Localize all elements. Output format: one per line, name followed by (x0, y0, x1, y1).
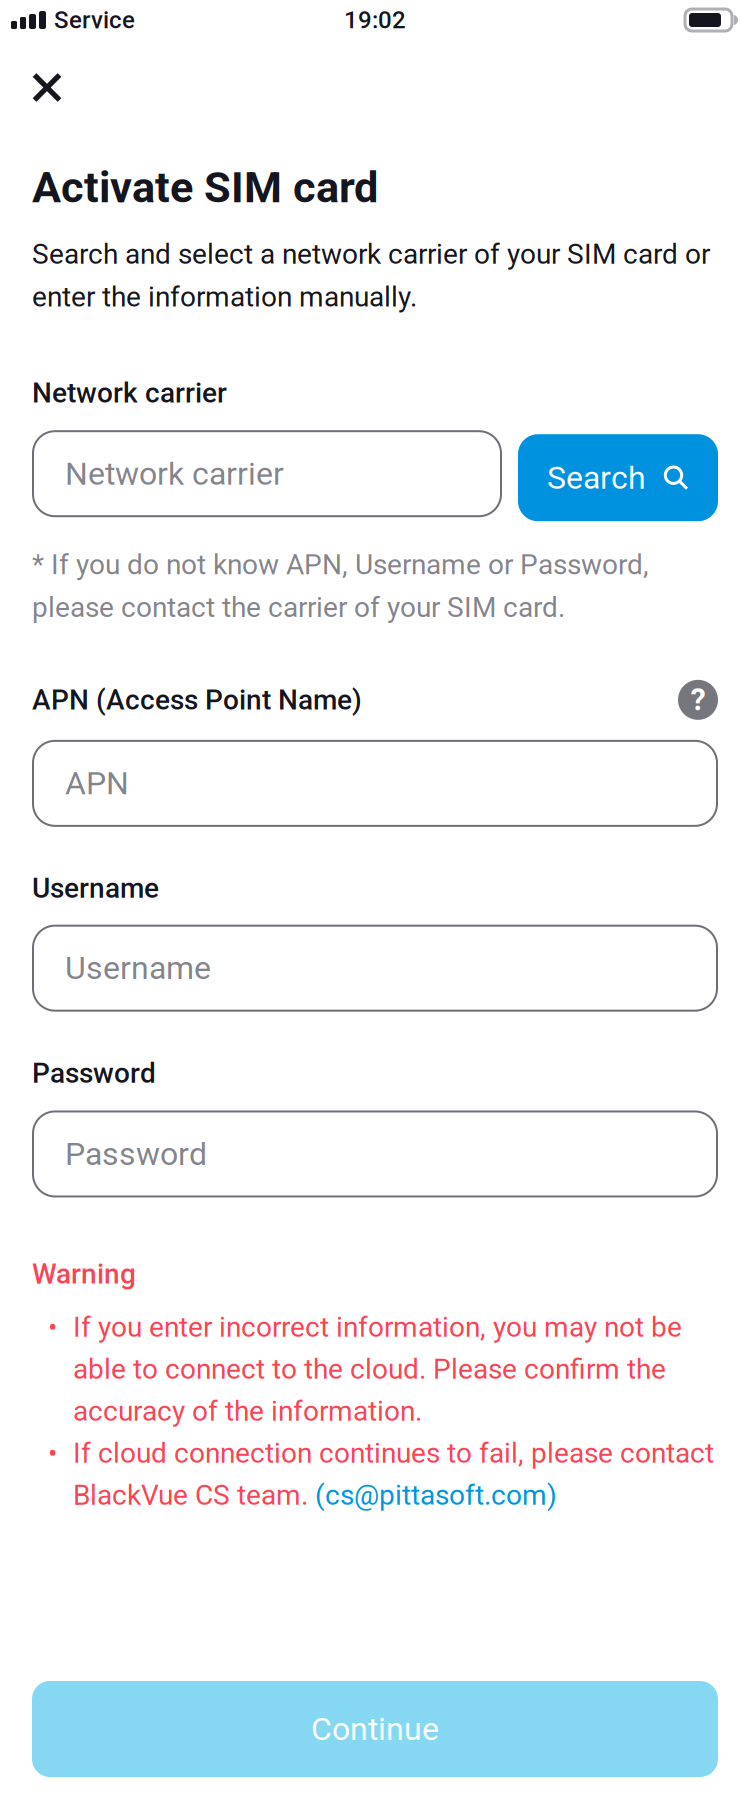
staticText: Service (54, 6, 135, 34)
staticText: If cloud connection continues to fail, p… (73, 1437, 714, 1470)
button[interactable]: About APN (678, 680, 718, 720)
button[interactable]: Network carrier (32, 430, 502, 517)
staticText: 19:02 (344, 6, 406, 34)
staticText: Network carrier (65, 455, 284, 492)
button[interactable]: (cs@pittasoft.com) (315, 1474, 557, 1516)
button[interactable]: Close (0, 48, 84, 108)
staticText: Username (65, 949, 211, 987)
staticText: If you enter incorrect information, you … (73, 1311, 682, 1344)
staticText: • (48, 1437, 57, 1470)
staticText: APN (65, 765, 129, 802)
staticText: ? (690, 682, 705, 718)
button[interactable]: Search (518, 430, 718, 521)
staticText: accuracy of the information. (73, 1395, 422, 1428)
button[interactable]: Username (32, 925, 718, 1012)
staticText: BlackVue CS team. (73, 1479, 315, 1512)
staticText: (cs@pittasoft.com) (315, 1479, 557, 1512)
button[interactable]: APN (32, 740, 718, 827)
staticText: Continue (311, 1710, 439, 1748)
staticText: Activate SIM card (32, 162, 378, 213)
button[interactable]: Continue (32, 1681, 718, 1777)
staticText: Warning (32, 1257, 136, 1290)
button[interactable]: Password (32, 1110, 718, 1197)
staticText: Network carrier (32, 376, 227, 409)
staticText: APN (Access Point Name) (32, 683, 362, 716)
staticText: Search and select a network carrier of y… (32, 238, 710, 313)
staticText: Username (32, 872, 159, 905)
staticText: Search (547, 459, 646, 496)
staticText: • (48, 1311, 57, 1344)
staticText: Password (32, 1057, 156, 1089)
staticText: Password (65, 1135, 207, 1173)
staticText: * If you do not know APN, Username or Pa… (32, 548, 649, 624)
staticText: able to connect to the cloud. Please con… (73, 1353, 666, 1386)
